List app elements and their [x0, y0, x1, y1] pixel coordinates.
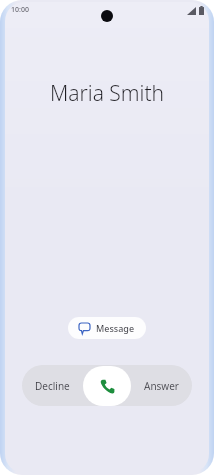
button[interactable]: Answer call — [83, 366, 131, 406]
staticText: Answer — [144, 379, 179, 393]
staticText: 10:00 — [11, 5, 29, 15]
staticText: Maria Smith — [0, 79, 214, 108]
staticText: Message — [96, 322, 135, 334]
button[interactable]: Message — [68, 317, 146, 339]
button[interactable]: Decline — [22, 365, 83, 406]
staticText: Decline — [35, 379, 70, 393]
button[interactable]: Answer — [131, 365, 192, 406]
